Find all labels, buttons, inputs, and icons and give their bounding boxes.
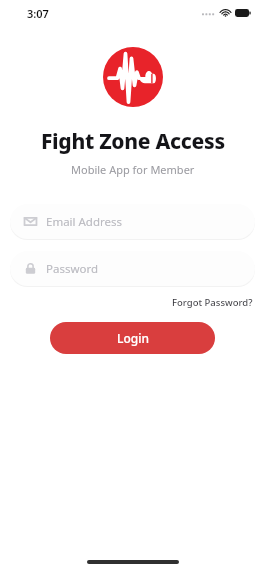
staticText: Login (117, 330, 149, 346)
staticText: Password (46, 261, 99, 277)
other: Fight Zone logo (103, 47, 163, 107)
staticText: Forgot Password? (172, 296, 253, 309)
staticText: Fight Zone Access (41, 127, 225, 156)
button[interactable]: Email Address (10, 204, 255, 239)
button[interactable]: Login (50, 322, 215, 354)
staticText: 3:07 (27, 6, 49, 21)
button[interactable]: Forgot Password? (170, 294, 255, 311)
staticText: Email Address (46, 214, 123, 230)
button[interactable]: Password (10, 251, 255, 286)
staticText: Mobile App for Member (71, 162, 195, 177)
